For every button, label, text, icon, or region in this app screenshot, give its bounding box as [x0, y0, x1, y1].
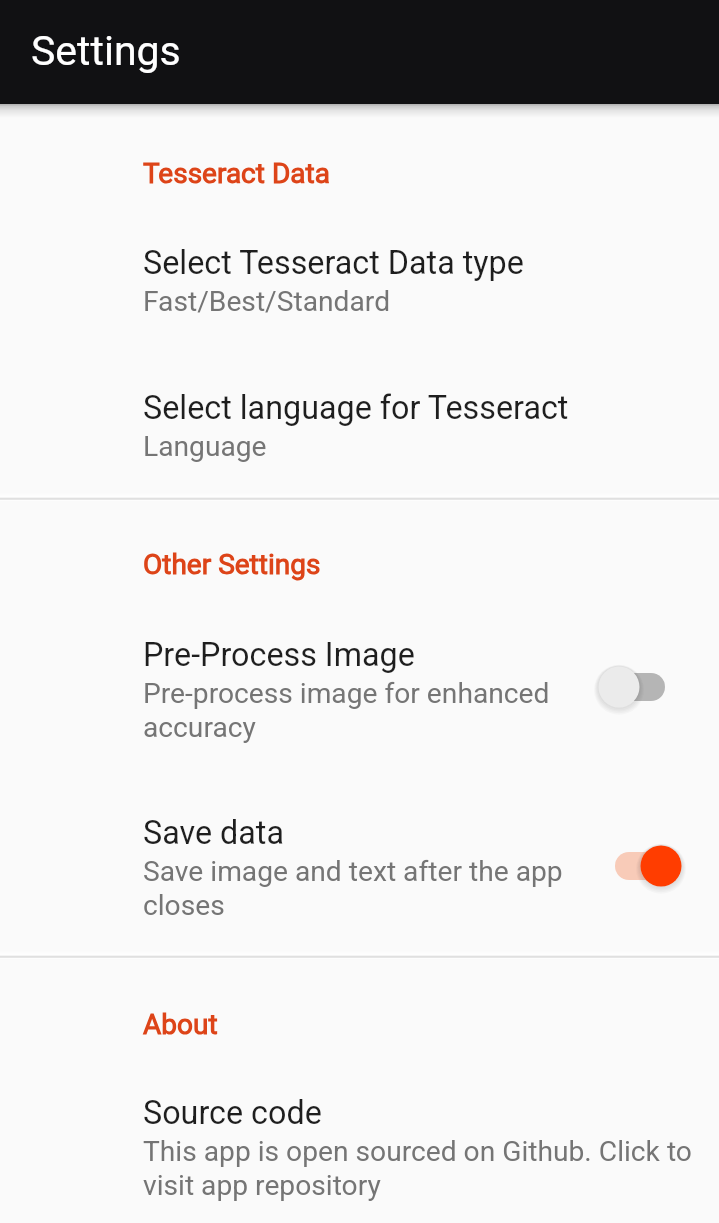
- staticText: Other Settings: [143, 548, 321, 581]
- button[interactable]: Turn off: [592, 838, 688, 894]
- button[interactable]: Source code: [0, 1058, 719, 1223]
- staticText: Language: [143, 430, 267, 463]
- staticText: Pre-process image for enhanced: [143, 677, 550, 710]
- staticText: About: [143, 1008, 218, 1041]
- staticText: Select language for Tesseract: [143, 389, 569, 427]
- staticText: Pre-Process Image: [143, 636, 415, 674]
- staticText: Settings: [31, 27, 181, 75]
- button[interactable]: Save data: [0, 778, 719, 950]
- staticText: closes: [143, 889, 225, 922]
- button[interactable]: Select Tesseract Data type: [0, 208, 719, 350]
- staticText: Source code: [143, 1094, 322, 1132]
- staticText: Tesseract Data: [143, 157, 330, 190]
- button[interactable]: Turn on: [592, 659, 688, 715]
- button[interactable]: Select language for Tesseract: [0, 353, 719, 492]
- staticText: Save image and text after the app: [143, 855, 563, 888]
- staticText: This app is open sourced on Github. Clic…: [143, 1135, 692, 1168]
- staticText: Save data: [143, 814, 284, 852]
- staticText: Fast/Best/Standard: [143, 285, 391, 318]
- button[interactable]: Pre-Process Image: [0, 600, 719, 772]
- staticText: visit app repository: [143, 1169, 381, 1202]
- staticText: Select Tesseract Data type: [143, 244, 524, 282]
- staticText: accuracy: [143, 711, 256, 744]
